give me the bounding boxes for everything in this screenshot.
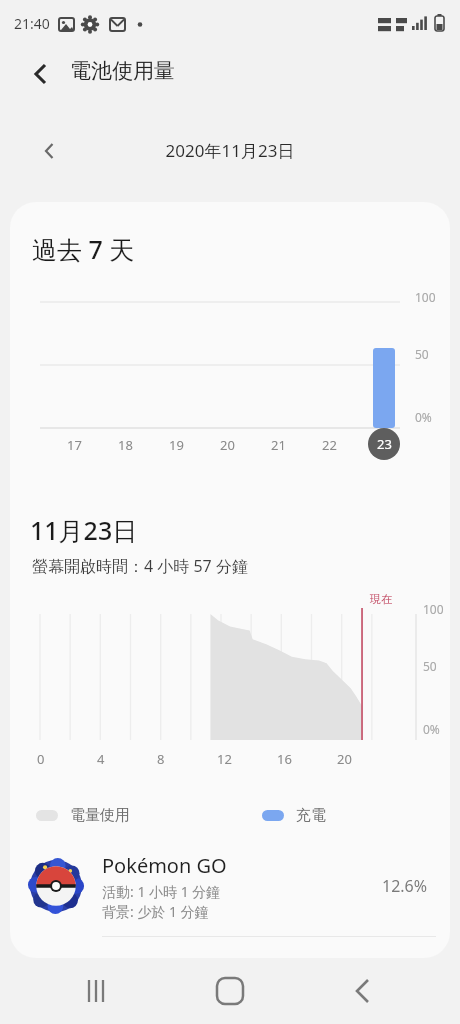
staticText: 22 [322, 436, 337, 454]
staticText: 19 [169, 436, 184, 454]
staticText: 18 [118, 436, 133, 454]
staticText: Pokémon GO [102, 852, 227, 879]
staticText: 11月23日 [30, 513, 138, 547]
staticText: 現在 [370, 592, 392, 606]
staticText: 21 [271, 436, 286, 454]
staticText: 0% [423, 721, 440, 737]
staticText: 50 [415, 346, 429, 362]
staticText: 8 [157, 750, 165, 768]
staticText: 背景: 少於 1 分鐘 [102, 902, 209, 921]
staticText: 電池使用量 [70, 58, 175, 84]
button[interactable]: Previous day [32, 134, 66, 168]
button[interactable]: 電量使用 [36, 806, 130, 825]
staticText: 100 [423, 601, 444, 617]
staticText: 16 [277, 750, 292, 768]
button[interactable]: Pokémon GO [10, 840, 450, 932]
staticText: 電量使用 [70, 806, 130, 825]
button[interactable]: Back [342, 971, 382, 1011]
staticText: 17 [67, 436, 82, 454]
staticText: 12.6% [382, 875, 428, 897]
button[interactable]: Home [210, 971, 250, 1011]
staticText: 螢幕開啟時間：4 小時 57 分鐘 [32, 555, 248, 577]
staticText: 100 [415, 289, 436, 305]
button[interactable]: 23 [368, 428, 400, 460]
button[interactable]: 充電 [262, 806, 326, 825]
staticText: 2020年11月23日 [0, 139, 460, 162]
staticText: 0 [37, 750, 45, 768]
staticText: 12 [217, 750, 232, 768]
staticText: 0% [415, 409, 432, 425]
staticText: 充電 [296, 806, 326, 825]
staticText: 過去 7 天 [32, 232, 135, 266]
button[interactable]: Back [22, 56, 58, 92]
staticText: 活動: 1 小時 1 分鐘 [102, 882, 221, 901]
staticText: 20 [337, 750, 352, 768]
button[interactable]: Recents [76, 971, 116, 1011]
staticText: 20 [220, 436, 235, 454]
staticText: 21:40 [14, 14, 50, 33]
staticText: 4 [97, 750, 105, 768]
staticText: 23 [377, 435, 392, 453]
staticText: 50 [423, 658, 437, 674]
